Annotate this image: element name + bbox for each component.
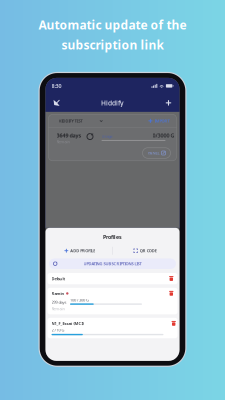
staticText: Remain: [56, 139, 69, 144]
staticText: subscription link: [61, 37, 163, 53]
staticText: HIDDIFY TEST: [58, 118, 82, 123]
staticText: Remain: [51, 306, 64, 311]
staticText: IMPORT: [154, 118, 169, 123]
staticText: Default: [51, 276, 65, 281]
staticText: UPDATING SUBSCRIPTIONS LIST: [83, 261, 141, 266]
button[interactable]: HIDDIFY TEST: [58, 115, 103, 127]
staticText: 8:30: [51, 82, 61, 89]
staticText: ADD PROFILE: [70, 248, 95, 253]
staticText: 0/3000 G: [152, 132, 174, 139]
staticText: 3649 days: [56, 132, 81, 139]
staticText: PANEL: [147, 150, 159, 156]
button[interactable]: N1_F_Essat (MCI): [47, 318, 177, 338]
button[interactable]: UPDATING SUBSCRIPTIONS LIST: [49, 258, 176, 269]
staticText: Ramin: [51, 291, 64, 296]
button[interactable]: QR CODE: [113, 245, 177, 256]
staticText: Profiles: [103, 233, 122, 240]
staticText: 2 / 10 G: [51, 327, 64, 333]
button[interactable]: Add profile: [161, 96, 175, 110]
button[interactable]: PANEL: [142, 148, 170, 158]
staticText: 299 days: [51, 299, 66, 305]
button[interactable]: Ramin: [47, 288, 177, 314]
staticText: 100 / 300 G: [70, 297, 89, 303]
staticText: Usage: [101, 134, 112, 139]
button[interactable]: Import: [148, 115, 169, 127]
staticText: QR CODE: [140, 248, 157, 253]
staticText: Automatic update of the: [38, 17, 186, 33]
button[interactable]: Proxy mode: [49, 96, 63, 110]
staticText: Hiddify: [101, 98, 124, 107]
button[interactable]: ADD PROFILE: [47, 245, 112, 256]
staticText: N1_F_Essat (MCI): [51, 321, 83, 326]
button[interactable]: Default: [47, 273, 177, 284]
